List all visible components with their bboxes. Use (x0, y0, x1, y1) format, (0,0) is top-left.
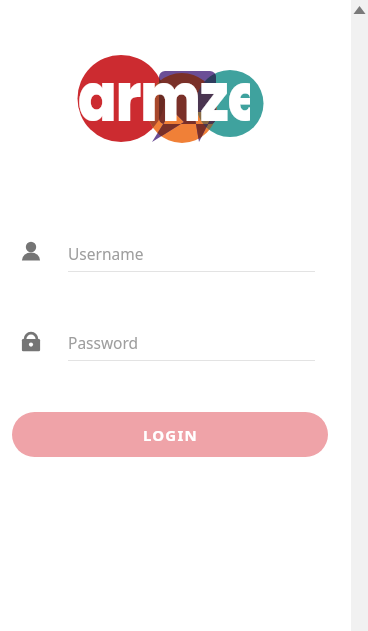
staticText: armze (78, 52, 250, 132)
staticText: Password (68, 332, 139, 353)
staticText: Username (68, 243, 144, 264)
button[interactable]: LOGIN (12, 412, 328, 457)
button[interactable]: Username (0, 238, 368, 278)
staticText: LOGIN (143, 425, 198, 445)
button[interactable]: Password (0, 327, 368, 367)
